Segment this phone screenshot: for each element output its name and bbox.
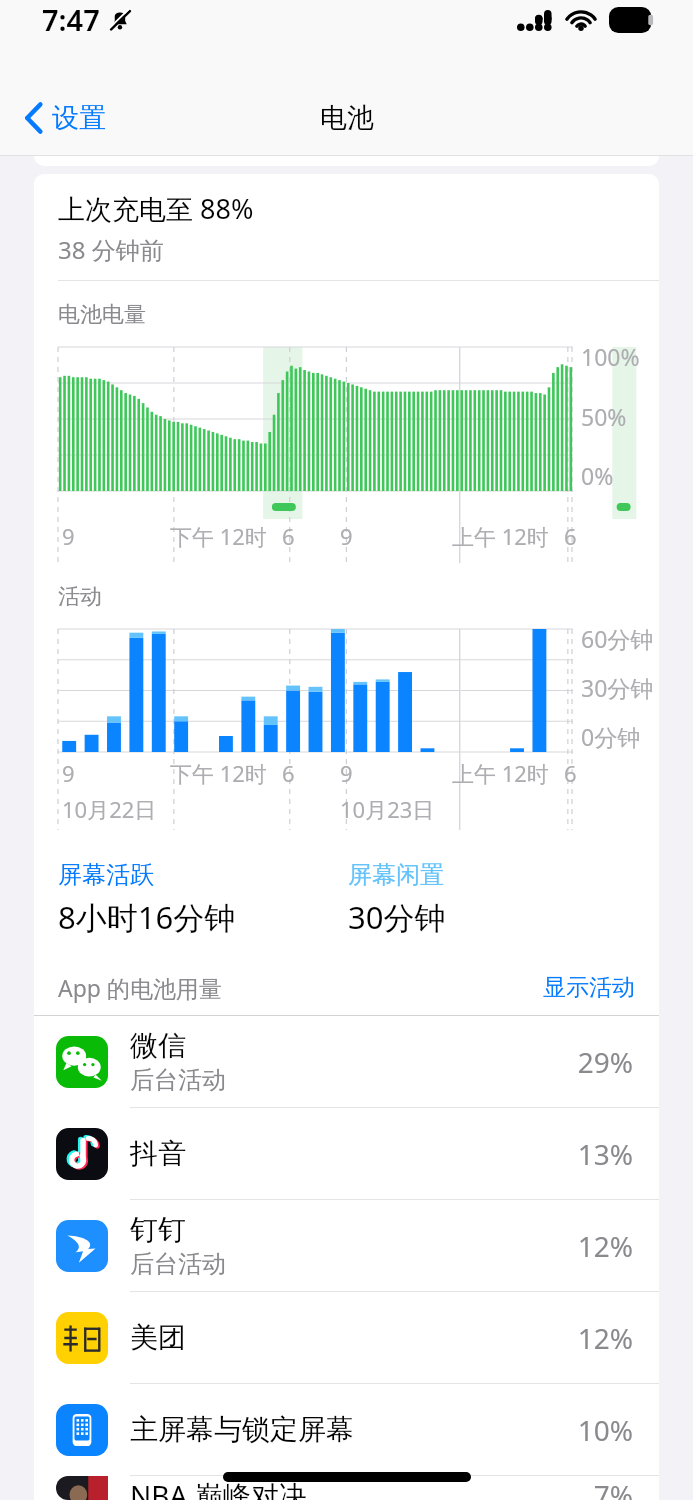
staticText: 屏幕闲置 <box>348 860 444 890</box>
button[interactable]: 上次充电至 88% <box>34 174 659 280</box>
staticText: 后台活动 <box>130 1249 226 1279</box>
staticText: 微信 <box>130 1028 186 1063</box>
staticText: 显示活动 <box>543 973 635 1002</box>
staticText: 0% <box>581 460 614 491</box>
staticText: 10月23日 <box>340 794 435 824</box>
staticText: 9 <box>62 758 75 788</box>
staticText: 9 <box>340 521 353 551</box>
staticText: 100% <box>581 341 640 372</box>
staticText: 下午 12时 <box>170 758 267 788</box>
staticText: 6 <box>282 758 295 788</box>
staticText: 38 分钟前 <box>58 233 164 266</box>
staticText: 7% <box>593 1476 633 1500</box>
staticText: 0分钟 <box>581 721 641 752</box>
staticText: 主屏幕与锁定屏幕 <box>130 1412 354 1447</box>
staticText: 30分钟 <box>348 896 446 938</box>
staticText: 29% <box>577 1043 633 1081</box>
staticText: 30分钟 <box>581 672 654 703</box>
button[interactable]: 设置 <box>18 93 112 143</box>
staticText: 7:47 <box>42 0 100 39</box>
staticText: 设置 <box>52 101 106 135</box>
staticText: 电池 <box>320 101 374 135</box>
button[interactable]: 钉钉 <box>34 1200 659 1291</box>
staticText: 电池电量 <box>58 301 146 329</box>
button[interactable]: 主屏幕与锁定屏幕 <box>34 1384 659 1475</box>
staticText: 美团 <box>130 1320 186 1355</box>
staticText: 10% <box>577 1411 633 1449</box>
staticText: 6 <box>282 521 295 551</box>
button[interactable]: 美团 <box>34 1292 659 1383</box>
staticText: 上次充电至 88% <box>58 190 254 227</box>
button[interactable]: 微信 <box>34 1016 659 1107</box>
staticText: 活动 <box>58 583 102 611</box>
staticText: 9 <box>340 758 353 788</box>
staticText: 钉钉 <box>130 1212 186 1247</box>
staticText: 10月22日 <box>62 794 157 824</box>
staticText: 6 <box>564 758 573 788</box>
button[interactable]: 显示活动 <box>543 973 635 1002</box>
staticText: 6 <box>564 521 573 551</box>
staticText: 60分钟 <box>581 623 654 654</box>
staticText: NBA 巅峰对决 <box>130 1476 307 1500</box>
staticText: 12% <box>577 1227 633 1265</box>
staticText: 8小时16分钟 <box>58 896 236 938</box>
staticText: 屏幕活跃 <box>58 860 154 890</box>
staticText: 50% <box>581 401 627 432</box>
button[interactable]: 抖音 <box>34 1108 659 1199</box>
staticText: 上午 12时 <box>452 758 549 788</box>
button[interactable]: NBA 巅峰对决 <box>34 1476 659 1500</box>
staticText: 13% <box>577 1135 633 1173</box>
staticText: 12% <box>577 1319 633 1357</box>
staticText: 后台活动 <box>130 1065 226 1095</box>
staticText: App 的电池用量 <box>58 972 222 1003</box>
staticText: 9 <box>62 521 75 551</box>
staticText: 上午 12时 <box>452 521 549 551</box>
staticText: 抖音 <box>130 1136 186 1171</box>
staticText: 下午 12时 <box>170 521 267 551</box>
